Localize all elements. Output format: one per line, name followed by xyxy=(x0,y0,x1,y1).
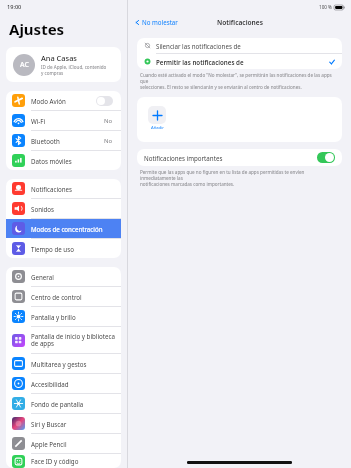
staticText: Tiempo de uso xyxy=(31,245,115,253)
staticText: Fondo de pantalla xyxy=(31,400,115,408)
button[interactable]: Modos de concentración xyxy=(6,219,121,238)
staticText: Apple Pencil xyxy=(31,440,115,448)
button[interactable]: Permitir las notificaciones de xyxy=(137,54,342,69)
button[interactable]: Bluetooth xyxy=(6,131,121,150)
staticText: Bluetooth xyxy=(31,137,104,145)
button[interactable]: Accesibilidad xyxy=(6,374,121,393)
button[interactable]: AC xyxy=(6,47,121,82)
staticText: Accesibilidad xyxy=(31,380,115,388)
button[interactable]: Pantalla y brillo xyxy=(6,307,121,326)
staticText: Notificaciones importantes xyxy=(144,154,317,162)
staticText: Pantalla y brillo xyxy=(31,313,115,321)
staticText: Modos de concentración xyxy=(31,225,115,233)
button[interactable]: No molestar xyxy=(133,16,180,28)
button[interactable]: Silenciar las notificaciones de xyxy=(137,38,342,53)
staticText: Cuando esté activado el modo "No molesta… xyxy=(140,72,339,90)
button[interactable]: Modo Avión xyxy=(6,91,121,110)
staticText: Ajustes xyxy=(9,19,65,39)
staticText: Añadir xyxy=(151,125,164,131)
button[interactable]: Datos móviles xyxy=(6,151,121,170)
staticText: No xyxy=(104,137,113,145)
button[interactable]: Siri y Buscar xyxy=(6,414,121,433)
button[interactable]: Notificaciones importantes xyxy=(137,149,342,166)
staticText: Centro de control xyxy=(31,293,115,301)
staticText: Face ID y código xyxy=(31,457,115,465)
staticText: ID de Apple, iCloud, contenido y compras xyxy=(41,64,107,76)
staticText: Siri y Buscar xyxy=(31,420,115,428)
button[interactable]: General xyxy=(6,267,121,286)
button[interactable]: Sonidos xyxy=(6,199,121,218)
staticText: Modo Avión xyxy=(31,97,96,105)
button[interactable]: Multitarea y gestos xyxy=(6,354,121,373)
button[interactable]: Centro de control xyxy=(6,287,121,306)
staticText: Permitir las notificaciones de xyxy=(156,58,329,66)
staticText: AC xyxy=(20,60,29,70)
staticText: General xyxy=(31,273,115,281)
button[interactable]: Modo Avión xyxy=(96,96,113,106)
staticText: Notificaciones xyxy=(31,185,115,193)
button[interactable]: Fondo de pantalla xyxy=(6,394,121,413)
staticText: Datos móviles xyxy=(31,157,115,165)
button[interactable]: Wi-Fi xyxy=(6,111,121,130)
button[interactable]: Face ID y código xyxy=(6,454,121,468)
staticText: 19:00 xyxy=(7,3,22,11)
button[interactable]: Tiempo de uso xyxy=(6,239,121,258)
button[interactable]: Pantalla de inicio y biblioteca de apps xyxy=(6,327,121,353)
staticText: Silenciar las notificaciones de xyxy=(156,42,241,50)
staticText: 100 % xyxy=(319,4,332,10)
button[interactable]: Notificaciones importantes xyxy=(317,152,335,163)
staticText: Notificaciones xyxy=(217,18,263,27)
button[interactable]: Añadir xyxy=(145,103,169,134)
button[interactable]: Apple Pencil xyxy=(6,434,121,453)
staticText: No molestar xyxy=(142,18,178,26)
button[interactable]: Notificaciones xyxy=(6,179,121,198)
staticText: Wi-Fi xyxy=(31,117,104,125)
staticText: Permite que las apps que no figuren en t… xyxy=(140,169,339,187)
staticText: No xyxy=(104,117,113,125)
staticText: Multitarea y gestos xyxy=(31,360,115,368)
staticText: Ana Casas xyxy=(41,53,77,63)
staticText: Pantalla de inicio y biblioteca de apps xyxy=(31,332,115,348)
staticText: Sonidos xyxy=(31,205,115,213)
